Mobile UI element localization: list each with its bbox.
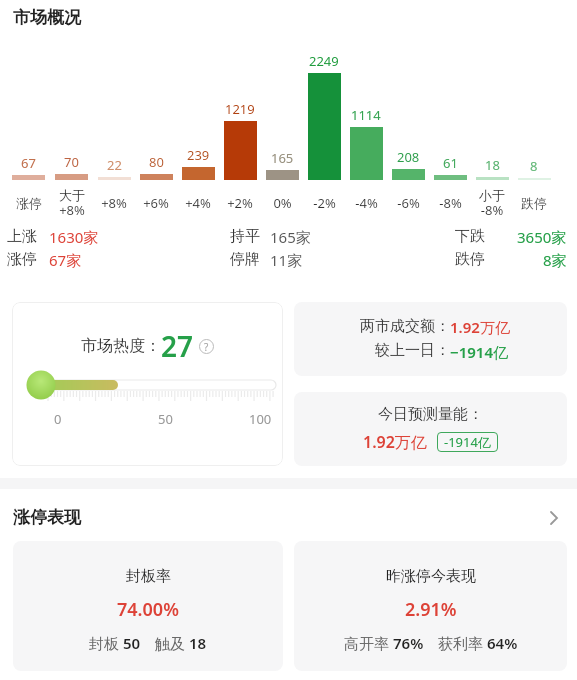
staticText: 50 bbox=[158, 410, 173, 428]
staticText: 2.91% bbox=[405, 597, 457, 622]
staticText: 大于 +8% bbox=[59, 187, 85, 219]
staticText: 3650家 bbox=[517, 227, 567, 245]
staticText: 1630家 bbox=[49, 227, 99, 245]
staticText: −1914亿 bbox=[450, 342, 508, 362]
staticText: 市场热度： bbox=[81, 336, 161, 356]
staticText: 1.92万亿 bbox=[450, 317, 510, 337]
staticText: 持平 bbox=[230, 227, 260, 245]
staticText: 触及 bbox=[155, 633, 189, 653]
staticText: 跌停 bbox=[521, 195, 547, 211]
button[interactable]: 昨涨停今表现 bbox=[294, 541, 567, 671]
staticText: 8家 bbox=[543, 250, 567, 268]
staticText: 8 bbox=[530, 157, 538, 175]
staticText: 下跌 bbox=[455, 227, 485, 245]
staticText: 市场概况 bbox=[13, 7, 81, 28]
staticText: 1219 bbox=[225, 100, 255, 118]
staticText: 小于 -8% bbox=[479, 187, 505, 219]
staticText: 208 bbox=[397, 148, 420, 166]
staticText: 18 bbox=[189, 633, 207, 653]
staticText: 22 bbox=[107, 156, 122, 174]
staticText: 涨停表现 bbox=[13, 507, 81, 528]
staticText: 1114 bbox=[351, 106, 381, 124]
staticText: 165 bbox=[271, 149, 294, 167]
staticText: 停牌 bbox=[230, 250, 260, 268]
staticText: 27 bbox=[161, 327, 194, 365]
button[interactable] bbox=[546, 510, 562, 526]
staticText: 上涨 bbox=[7, 227, 37, 245]
staticText: 0 bbox=[54, 410, 62, 428]
staticText: 50 bbox=[123, 633, 141, 653]
button[interactable]: 市场热度： bbox=[12, 302, 283, 466]
staticText: 74.00% bbox=[117, 597, 179, 622]
staticText: 100 bbox=[249, 410, 272, 428]
staticText: ? bbox=[204, 340, 209, 354]
staticText: 封板 bbox=[89, 633, 123, 653]
staticText: 今日预测量能： bbox=[378, 405, 483, 424]
staticText: 64% bbox=[487, 633, 518, 653]
staticText: -2% bbox=[313, 194, 336, 212]
staticText: 239 bbox=[187, 146, 210, 164]
staticText: 获利率 bbox=[438, 633, 487, 653]
button[interactable]: 两市成交额： bbox=[294, 302, 567, 376]
staticText: 80 bbox=[149, 153, 164, 171]
staticText: 67家 bbox=[49, 250, 82, 268]
staticText: -1914亿 bbox=[444, 433, 491, 451]
staticText: 165家 bbox=[270, 227, 311, 245]
staticText: 封板率 bbox=[126, 567, 171, 586]
staticText: 61 bbox=[443, 154, 458, 172]
button[interactable]: 今日预测量能： bbox=[294, 392, 567, 466]
staticText: 0% bbox=[273, 194, 292, 212]
staticText: 67 bbox=[21, 154, 36, 172]
staticText: +8% bbox=[101, 194, 127, 212]
staticText: 两市成交额： bbox=[360, 317, 450, 336]
staticText: +6% bbox=[143, 194, 169, 212]
staticText: 高开率 bbox=[344, 633, 393, 653]
staticText: -4% bbox=[355, 194, 378, 212]
staticText: 76% bbox=[393, 633, 424, 653]
staticText: -8% bbox=[439, 194, 462, 212]
staticText: +4% bbox=[185, 194, 211, 212]
button[interactable]: 封板率 bbox=[13, 541, 283, 671]
staticText: 2249 bbox=[309, 52, 339, 70]
staticText: 跌停 bbox=[455, 250, 485, 268]
staticText: +2% bbox=[227, 194, 253, 212]
staticText: 涨停 bbox=[7, 250, 37, 268]
staticText: 11家 bbox=[270, 250, 303, 268]
staticText: -6% bbox=[397, 194, 420, 212]
staticText: 涨停 bbox=[16, 195, 42, 211]
staticText: 70 bbox=[64, 153, 79, 171]
staticText: 较上一日： bbox=[375, 341, 450, 360]
staticText: 昨涨停今表现 bbox=[386, 567, 476, 586]
staticText: 18 bbox=[485, 156, 500, 174]
staticText: 1.92万亿 bbox=[363, 431, 427, 453]
